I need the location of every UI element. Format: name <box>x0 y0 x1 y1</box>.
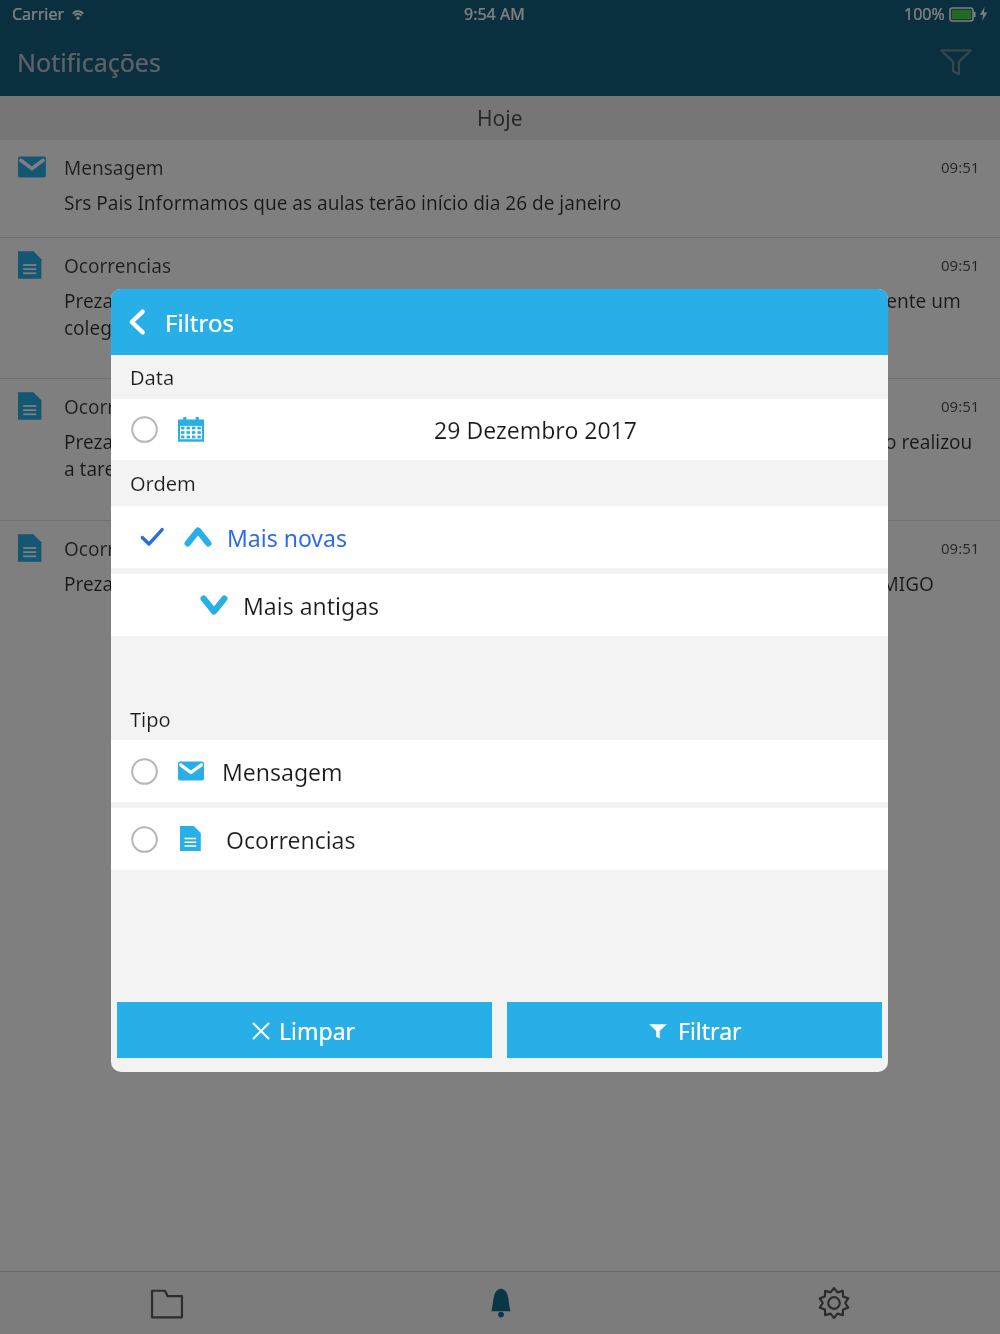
staticText: Ordem <box>130 470 196 497</box>
button[interactable]: Mensagem <box>111 740 888 802</box>
staticText: Prezados pais, o aluno JOAO VITOR AGUIAR… <box>64 429 978 482</box>
staticText: Mensagem <box>64 155 941 181</box>
staticText: Filtros <box>165 306 234 339</box>
staticText: Limpar <box>279 1015 356 1046</box>
staticText: Carrier <box>12 3 65 25</box>
button[interactable]: Ocorrencias <box>111 808 888 870</box>
staticText: Ocorrencias <box>226 824 356 855</box>
staticText: 100% <box>904 3 945 25</box>
staticText: 09:51 <box>941 538 980 558</box>
button[interactable]: Configurações <box>667 1272 1000 1334</box>
button[interactable]: Filtrar <box>507 1002 882 1058</box>
staticText: Filtrar <box>678 1015 742 1046</box>
staticText: Tipo <box>130 706 171 733</box>
staticText: Prezados pais, o aluno JOAO VITOR AGUIAR… <box>64 288 978 341</box>
button[interactable]: Notificações <box>334 1272 667 1334</box>
staticText: 09:51 <box>941 255 980 275</box>
button[interactable]: Arquivos <box>0 1272 334 1334</box>
staticText: Data <box>130 364 175 391</box>
staticText: 29 Dezembro 2017 <box>434 414 637 445</box>
staticText: Mensagem <box>222 756 343 787</box>
button[interactable]: Voltar <box>111 289 165 355</box>
button[interactable]: Filtros <box>932 38 980 86</box>
staticText: 09:51 <box>941 396 980 416</box>
staticText: 09:51 <box>941 157 980 177</box>
staticText: Hoje <box>477 104 523 133</box>
button[interactable]: Limpar <box>117 1002 492 1058</box>
staticText: 9:54 AM <box>464 3 525 25</box>
staticText: Ocorrencias <box>64 253 941 279</box>
staticText: Prezados pais, o aluno JOAO VITOR AGUIAR… <box>64 571 934 597</box>
staticText: Srs Pais Informamos que as aulas terão i… <box>64 190 622 216</box>
staticText: Ocorrencias <box>64 394 941 420</box>
button[interactable]: Mais antigas <box>111 574 888 636</box>
button[interactable]: Mais novas <box>111 506 888 568</box>
staticText: Mais antigas <box>243 590 380 621</box>
button[interactable]: 29 Dezembro 2017 <box>111 399 888 460</box>
staticText: Mais novas <box>227 522 347 553</box>
staticText: Ocorrencias <box>64 536 941 562</box>
staticText: Notificações <box>17 45 161 79</box>
